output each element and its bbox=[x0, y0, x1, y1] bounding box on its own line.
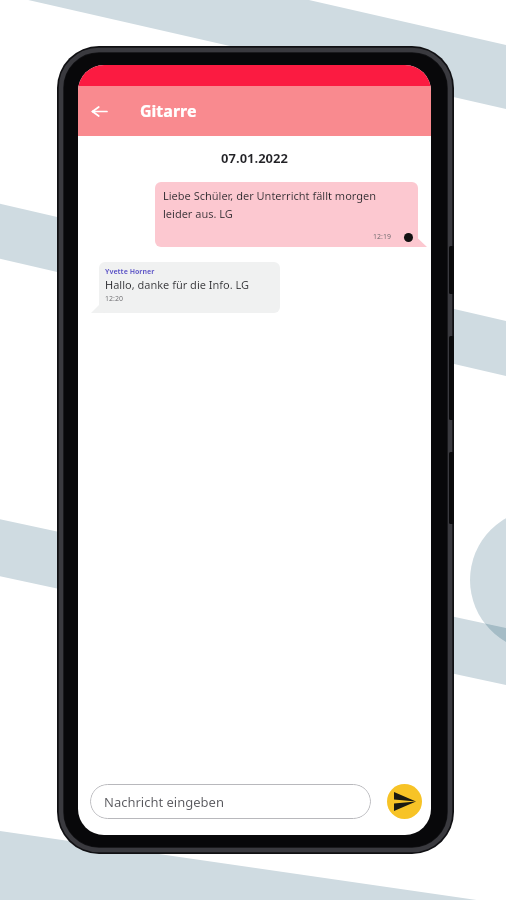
button[interactable]: Send message bbox=[387, 784, 422, 819]
button[interactable]: Yvette Horner bbox=[99, 262, 280, 313]
staticText: 12:20 bbox=[105, 294, 123, 304]
staticText: Liebe Schüler, der Unterricht fällt morg… bbox=[163, 188, 377, 221]
button[interactable]: Nachricht eingeben bbox=[90, 784, 371, 819]
button[interactable]: Back bbox=[81, 93, 117, 129]
staticText: Gitarre bbox=[140, 100, 197, 122]
staticText: Nachricht eingeben bbox=[104, 793, 224, 811]
staticText: Yvette Horner bbox=[105, 267, 155, 277]
button[interactable]: Liebe Schüler, der Unterricht fällt morg… bbox=[155, 182, 418, 247]
staticText: 07.01.2022 bbox=[78, 149, 431, 167]
staticText: Hallo, danke für die Info. LG bbox=[105, 277, 250, 292]
staticText: 12:19 bbox=[373, 232, 391, 242]
